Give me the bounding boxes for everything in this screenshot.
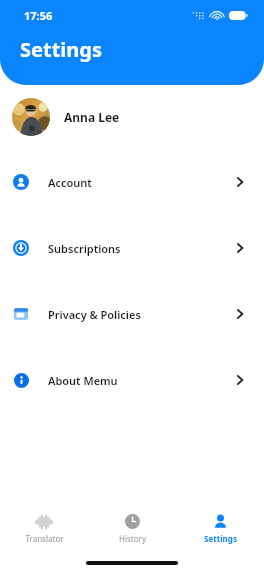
staticText: About Memu: [48, 373, 118, 388]
button[interactable]: Subscriptions: [0, 215, 264, 281]
staticText: History: [119, 533, 146, 544]
staticText: Settings: [204, 533, 237, 544]
button[interactable]: History: [88, 505, 176, 553]
staticText: Subscriptions: [48, 241, 121, 256]
staticText: Privacy & Policies: [48, 307, 141, 322]
button[interactable]: Account: [0, 149, 264, 215]
staticText: Anna Lee: [64, 109, 120, 125]
other: Settings: [213, 514, 228, 529]
button[interactable]: Anna Lee: [0, 85, 264, 149]
staticText: Account: [48, 175, 92, 190]
button[interactable]: Settings: [176, 505, 264, 553]
staticText: 17:56: [24, 8, 53, 23]
button[interactable]: Privacy and Policies: [0, 281, 264, 347]
other: Translator: [34, 515, 54, 529]
other: About Memu: [14, 373, 29, 388]
other: History: [125, 514, 140, 529]
staticText: Translator: [25, 533, 64, 544]
staticText: Settings: [20, 36, 102, 63]
other: Subscriptions: [13, 240, 29, 256]
button[interactable]: About Memu: [0, 347, 264, 413]
button[interactable]: Translator: [0, 505, 88, 553]
other: Privacy and Policies: [13, 306, 29, 322]
other: Account: [13, 174, 29, 190]
